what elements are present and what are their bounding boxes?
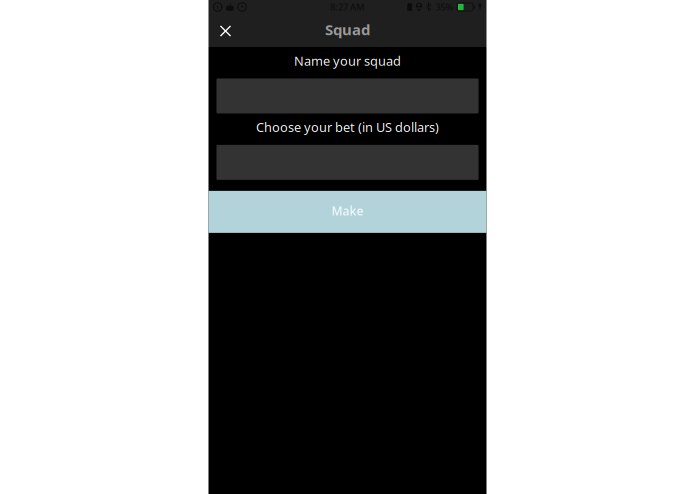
staticText: Name your squad (294, 52, 401, 69)
button[interactable]: Make (208, 191, 486, 233)
staticText: 35% (435, 1, 453, 13)
button[interactable]: Name your squad text field (216, 78, 478, 113)
staticText: Make (331, 203, 363, 219)
staticText: Choose your bet (in US dollars) (256, 118, 439, 136)
button[interactable]: Close (208, 14, 242, 47)
staticText: 8:27 AM (330, 1, 365, 13)
staticText: Squad (325, 19, 370, 40)
